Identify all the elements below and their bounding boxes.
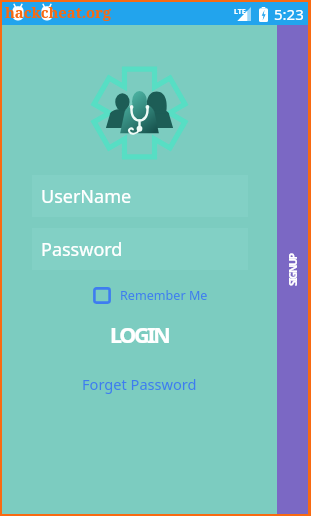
- button[interactable]: Password: [32, 228, 248, 270]
- button[interactable]: Remember Me: [89, 283, 212, 308]
- staticText: 5:23: [274, 4, 304, 24]
- staticText: Password: [41, 237, 123, 262]
- button[interactable]: LOGIN: [2, 320, 277, 348]
- staticText: LOGIN: [110, 320, 169, 348]
- button[interactable]: Forget Password: [2, 373, 277, 395]
- staticText: UserName: [41, 184, 132, 209]
- staticText: Remember Me: [120, 287, 208, 304]
- button[interactable]: UserName: [32, 175, 248, 217]
- other: App logo: [93, 68, 186, 158]
- staticText: Forget Password: [82, 374, 197, 394]
- staticText: LTE: [234, 7, 246, 17]
- staticText: SIGNUP: [286, 254, 300, 286]
- staticText: hackcheat.org: [5, 2, 112, 22]
- button[interactable]: SIGNUP: [277, 25, 308, 514]
